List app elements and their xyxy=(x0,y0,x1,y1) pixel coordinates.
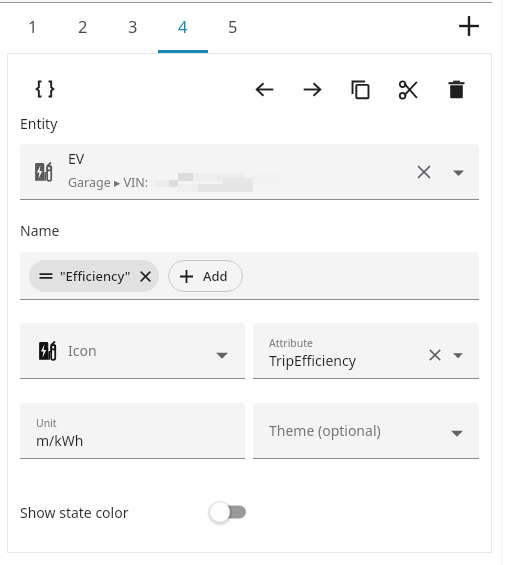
staticText: Attribute xyxy=(269,336,313,350)
staticText: Theme (optional) xyxy=(269,421,454,440)
staticText: Garage ▸ VIN: xyxy=(68,174,149,191)
button[interactable]: Delete xyxy=(432,65,480,113)
button[interactable]: Open dropdown xyxy=(445,159,471,185)
button[interactable]: "Efficiency" xyxy=(20,252,479,299)
button[interactable]: Icon xyxy=(20,323,245,378)
staticText: Add xyxy=(203,267,228,285)
staticText: Icon xyxy=(68,341,216,360)
staticText: 1 xyxy=(28,15,38,37)
button[interactable]: 3 xyxy=(108,0,158,53)
staticText: 4 xyxy=(178,15,188,37)
staticText: 5 xyxy=(228,15,238,37)
button[interactable]: Copy xyxy=(336,65,384,113)
button[interactable]: Unit xyxy=(20,403,245,458)
button[interactable]: Attribute xyxy=(253,323,479,378)
button[interactable]: Redo xyxy=(288,65,336,113)
staticText: 2 xyxy=(78,15,88,37)
staticText: Unit xyxy=(36,416,57,430)
staticText: 3 xyxy=(128,15,138,37)
button[interactable]: Code xyxy=(25,69,65,109)
staticText: "Efficiency" xyxy=(60,267,131,285)
button[interactable]: 4 xyxy=(158,0,208,53)
button[interactable]: Show state color xyxy=(7,489,492,535)
button[interactable]: Add xyxy=(447,4,491,48)
button[interactable]: Add xyxy=(168,260,243,292)
button[interactable]: 2 xyxy=(58,0,108,53)
button[interactable]: EV xyxy=(20,144,479,199)
button[interactable]: Theme (optional) xyxy=(253,403,479,458)
button[interactable]: "Efficiency" xyxy=(29,260,159,292)
staticText: m/kWh xyxy=(36,431,84,450)
button[interactable]: Clear xyxy=(409,157,439,187)
staticText: TripEfficiency xyxy=(269,351,356,370)
staticText: Name xyxy=(20,221,60,240)
button[interactable]: Undo xyxy=(240,65,288,113)
button[interactable]: 5 xyxy=(208,0,258,53)
button[interactable]: Cut xyxy=(384,65,432,113)
button[interactable]: 1 xyxy=(8,0,58,53)
staticText: EV xyxy=(68,149,85,168)
staticText: Entity xyxy=(20,114,58,133)
staticText: Show state color xyxy=(20,503,129,522)
